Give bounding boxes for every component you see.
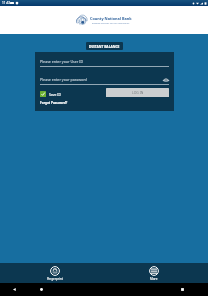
button[interactable]: Forgot Password? bbox=[40, 101, 68, 105]
staticText: More bbox=[150, 277, 158, 281]
staticText: Please enter your password bbox=[40, 77, 87, 82]
button[interactable]: Fingerprint bbox=[39, 265, 71, 282]
button[interactable]: Recents bbox=[179, 286, 186, 293]
button[interactable]: Back bbox=[11, 286, 18, 293]
staticText: 11:43 bbox=[2, 1, 11, 5]
button[interactable]: More bbox=[141, 265, 167, 282]
button[interactable]: Save ID bbox=[40, 90, 61, 98]
staticText: INSTANT BALANCE bbox=[89, 44, 120, 48]
staticText: LOG IN bbox=[132, 90, 144, 95]
staticText: Save ID bbox=[49, 92, 61, 97]
button[interactable]: LOG IN bbox=[106, 88, 169, 97]
staticText: Fingerprint bbox=[47, 277, 63, 281]
button[interactable]: Home bbox=[38, 286, 45, 293]
staticText: Banking Services for the Community bbox=[92, 22, 130, 25]
staticText: County National Bank bbox=[90, 16, 132, 21]
button[interactable]: Show password bbox=[162, 76, 170, 84]
staticText: Please enter your User ID bbox=[40, 59, 84, 64]
button[interactable]: INSTANT BALANCE bbox=[86, 42, 123, 50]
